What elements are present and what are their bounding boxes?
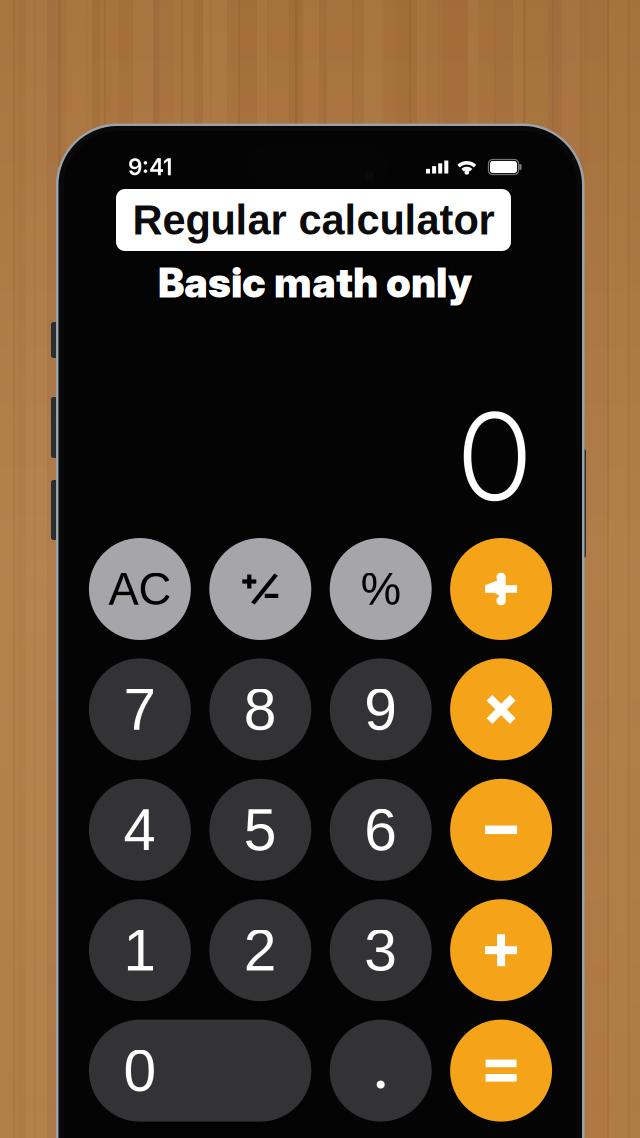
button[interactable]: Add xyxy=(450,899,552,1001)
button[interactable]: 5 xyxy=(209,779,311,881)
staticText: 0 xyxy=(123,1038,156,1103)
staticText: 7 xyxy=(123,677,156,742)
staticText: 0 xyxy=(459,384,530,529)
staticText: 5 xyxy=(244,797,277,862)
button[interactable]: 0 xyxy=(89,1020,311,1122)
staticText: Regular calculator xyxy=(132,197,494,243)
button[interactable]: 8 xyxy=(209,658,311,760)
staticText: Basic math only xyxy=(159,261,473,310)
staticText: 9:41 xyxy=(128,153,172,181)
button[interactable]: 3 xyxy=(330,899,432,1001)
staticText: 9 xyxy=(364,677,397,742)
staticText: Basic math only xyxy=(156,261,470,310)
staticText: 6 xyxy=(364,797,397,862)
staticText: Basic math only xyxy=(158,261,472,310)
button[interactable]: 2 xyxy=(209,899,311,1001)
staticText: Basic math only xyxy=(161,259,475,309)
staticText: Basic math only xyxy=(156,255,470,305)
staticText: 8 xyxy=(244,677,277,742)
button[interactable]: Equals xyxy=(450,1020,552,1122)
button[interactable]: Plus minus xyxy=(209,538,311,640)
button[interactable]: Subtract xyxy=(450,779,552,881)
staticText: AC xyxy=(108,564,171,614)
button[interactable]: % xyxy=(330,538,432,640)
staticText: 4 xyxy=(123,797,156,862)
button[interactable]: Multiply xyxy=(450,658,552,760)
button[interactable]: 4 xyxy=(89,779,191,881)
button[interactable]: 1 xyxy=(89,899,191,1001)
button[interactable]: 9 xyxy=(330,658,432,760)
staticText: Basic math only xyxy=(161,256,475,306)
staticText: Basic math only xyxy=(155,259,469,309)
staticText: 1 xyxy=(123,917,156,983)
button[interactable]: AC xyxy=(89,538,191,640)
staticText: Basic math only xyxy=(158,255,472,304)
staticText: 3 xyxy=(364,917,397,983)
staticText: Basic math only xyxy=(155,258,469,307)
staticText: 2 xyxy=(244,917,277,983)
staticText: Basic math only xyxy=(155,256,469,306)
staticText: % xyxy=(361,564,401,614)
staticText: Basic math only xyxy=(159,255,473,305)
staticText: Basic math only xyxy=(158,258,472,307)
button[interactable]: 6 xyxy=(330,779,432,881)
staticText: Basic math only xyxy=(161,258,475,307)
button[interactable]: Divide xyxy=(450,538,552,640)
button[interactable]: 7 xyxy=(89,658,191,760)
button[interactable]: Decimal point xyxy=(330,1020,432,1122)
